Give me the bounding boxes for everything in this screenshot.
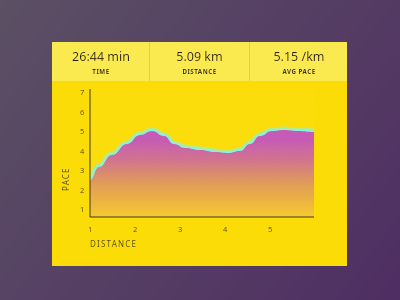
staticText: PACE <box>60 167 71 191</box>
staticText: 4 <box>80 146 85 156</box>
staticText: 7 <box>80 87 85 97</box>
staticText: 2 <box>133 224 138 234</box>
staticText: 3 <box>80 165 85 175</box>
staticText: 1 <box>88 224 93 234</box>
staticText: 6 <box>80 107 85 117</box>
staticText: 1 <box>80 204 85 214</box>
staticText: 4 <box>223 224 228 234</box>
staticText: 5.15 /km <box>273 48 325 65</box>
button[interactable]: 5.09 km <box>150 42 249 81</box>
other: Pace over distance chart <box>52 81 347 266</box>
button[interactable]: 5.15 /km <box>250 42 347 81</box>
staticText: TIME <box>92 67 110 75</box>
staticText: 26:44 min <box>72 48 130 65</box>
staticText: 5 <box>80 126 85 136</box>
staticText: 2 <box>80 185 85 195</box>
staticText: DISTANCE <box>182 67 217 75</box>
staticText: 5.09 km <box>176 48 223 65</box>
staticText: DISTANCE <box>90 238 138 249</box>
staticText: 3 <box>178 224 183 234</box>
staticText: 5 <box>268 224 273 234</box>
button[interactable]: 26:44 min <box>52 42 149 81</box>
staticText: AVG PACE <box>282 67 316 75</box>
